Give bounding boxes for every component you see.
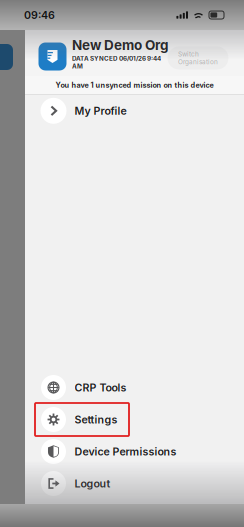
staticText: Logout: [74, 477, 110, 490]
button[interactable]: Logout: [25, 467, 244, 499]
button[interactable]: CRP Tools: [25, 371, 244, 403]
staticText: Switch Organisation: [178, 50, 218, 66]
button[interactable]: Device Permissions: [25, 435, 244, 467]
staticText: 09:46: [24, 8, 55, 21]
staticText: New Demo Org: [72, 37, 169, 53]
button[interactable]: My Profile: [25, 95, 244, 127]
button[interactable]: Settings: [25, 403, 244, 435]
staticText: You have 1 unsynced mission on this devi…: [55, 81, 213, 89]
staticText: Device Permissions: [74, 445, 176, 458]
staticText: My Profile: [74, 104, 126, 117]
button[interactable]: Switch Organisation: [167, 46, 228, 69]
staticText: CRP Tools: [74, 381, 126, 394]
staticText: DATA SYNCED 06/01/26 9:44 AM: [72, 55, 161, 70]
staticText: Settings: [74, 413, 117, 426]
